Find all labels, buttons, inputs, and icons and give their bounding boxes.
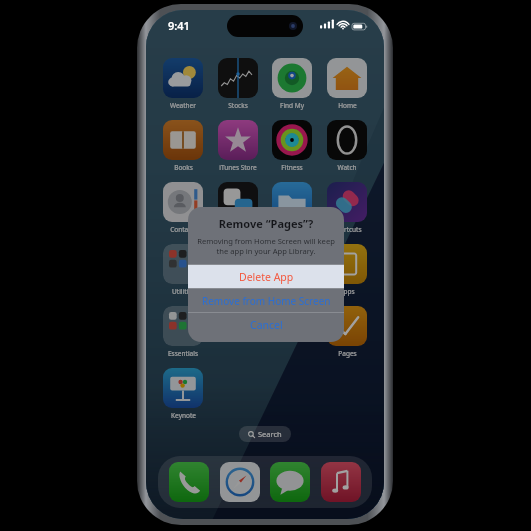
button[interactable]: Files xyxy=(268,182,316,234)
staticText: Delete App xyxy=(239,270,294,284)
staticText: Weather xyxy=(170,101,196,110)
button[interactable]: Books xyxy=(159,120,207,172)
staticText: Books xyxy=(174,163,193,172)
staticText: iTunes Store xyxy=(219,163,257,172)
button[interactable]: Search xyxy=(239,426,291,442)
button[interactable]: Weather xyxy=(159,58,207,110)
button[interactable] xyxy=(268,368,316,420)
staticText: Utilities xyxy=(172,287,195,296)
staticText: Pages xyxy=(338,349,357,358)
staticText: Stocks xyxy=(228,101,248,110)
staticText: Remove from Home Screen xyxy=(202,294,331,308)
staticText: Home xyxy=(338,101,357,110)
button[interactable]: Safari xyxy=(220,462,260,502)
staticText: Essentials xyxy=(168,349,198,358)
button[interactable]: Cancel xyxy=(188,313,344,336)
button[interactable]: iTunes Store xyxy=(214,120,262,172)
staticText: Cancel xyxy=(250,318,283,332)
button[interactable] xyxy=(268,306,316,358)
button[interactable]: Home xyxy=(323,58,371,110)
button[interactable]: Delete App xyxy=(188,265,344,288)
button[interactable] xyxy=(214,244,262,296)
button[interactable]: Essentials xyxy=(159,306,207,358)
button[interactable]: Apps xyxy=(323,244,371,296)
button[interactable]: Stocks xyxy=(214,58,262,110)
button[interactable]: Pages xyxy=(323,306,371,358)
button[interactable]: Phone xyxy=(169,462,209,502)
button[interactable] xyxy=(268,244,316,296)
button[interactable]: Messages xyxy=(270,462,310,502)
staticText: Contacts xyxy=(170,225,197,234)
staticText: Find My xyxy=(280,101,304,110)
staticText: Removing from Home Screen will keep the … xyxy=(193,236,339,256)
button[interactable]: Shortcuts xyxy=(323,182,371,234)
staticText: Apps xyxy=(339,287,355,296)
staticText: 9:41 xyxy=(168,18,190,33)
staticText: Keynote xyxy=(171,411,196,420)
button[interactable] xyxy=(214,306,262,358)
staticText: Search xyxy=(258,429,282,439)
button[interactable]: Translate xyxy=(214,182,262,234)
staticText: Remove “Pages”? xyxy=(188,216,344,231)
button[interactable]: Watch xyxy=(323,120,371,172)
button[interactable]: Fitness xyxy=(268,120,316,172)
button[interactable]: Contacts xyxy=(159,182,207,234)
staticText: Fitness xyxy=(281,163,303,172)
button[interactable]: Music xyxy=(321,462,361,502)
staticText: Translate xyxy=(224,225,252,234)
button[interactable]: Utilities xyxy=(159,244,207,296)
staticText: Watch xyxy=(337,163,357,172)
button[interactable]: Remove from Home Screen xyxy=(188,289,344,312)
staticText: Files xyxy=(285,225,299,234)
staticText: Shortcuts xyxy=(332,225,362,234)
button[interactable]: Keynote xyxy=(159,368,207,420)
button[interactable]: Find My xyxy=(268,58,316,110)
